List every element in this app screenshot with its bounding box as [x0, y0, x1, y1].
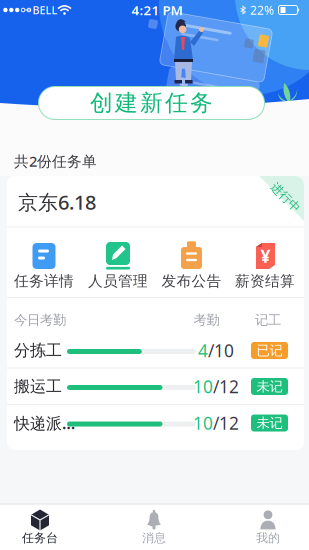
staticText: BELL — [32, 3, 57, 17]
staticText: 任务台 — [22, 531, 58, 545]
button[interactable]: 我的 — [228, 504, 308, 550]
staticText: 未记 — [256, 415, 282, 431]
staticText: 人员管理 — [88, 272, 148, 290]
staticText: 今日考勤 — [14, 312, 66, 328]
button[interactable]: 任务详情 — [7, 240, 80, 294]
staticText: 发布公告 — [161, 272, 221, 290]
button[interactable]: 人员管理 — [81, 240, 154, 294]
button[interactable]: 消息 — [114, 504, 194, 550]
staticText: 未记 — [256, 378, 282, 395]
staticText: 进行中 — [267, 190, 303, 205]
staticText: /12 — [213, 375, 239, 398]
staticText: 10 — [193, 375, 213, 398]
staticText: 搬运工 — [14, 377, 62, 396]
staticText: 消息 — [142, 531, 166, 545]
staticText: 考勤 — [193, 312, 219, 328]
button[interactable]: 搬运工 — [7, 369, 304, 403]
staticText: 22% — [250, 2, 274, 18]
button[interactable]: 任务台 — [0, 504, 80, 550]
button[interactable]: 发布公告 — [155, 240, 228, 294]
staticText: 京东6.18 — [18, 189, 96, 215]
staticText: 快递派… — [14, 412, 75, 434]
staticText: 薪资结算 — [235, 272, 295, 290]
button[interactable]: 快递派… — [7, 406, 304, 440]
staticText: 创建新任务 — [90, 89, 213, 117]
staticText: 共2份任务单 — [14, 151, 97, 171]
staticText: 分拣工 — [14, 341, 62, 360]
staticText: 任务详情 — [14, 272, 74, 290]
staticText: 我的 — [256, 531, 280, 545]
staticText: 4:21 PM — [131, 1, 182, 19]
staticText: 记工 — [255, 312, 281, 328]
staticText: 4 — [198, 339, 208, 362]
staticText: 已记 — [256, 342, 282, 359]
button[interactable]: ¥ — [228, 240, 301, 294]
button[interactable]: 创建新任务 — [38, 86, 265, 120]
staticText: /12 — [213, 411, 239, 434]
button[interactable]: 分拣工 — [7, 333, 304, 367]
staticText: ¥ — [260, 244, 270, 267]
staticText: /10 — [208, 339, 234, 362]
staticText: 10 — [193, 411, 213, 434]
